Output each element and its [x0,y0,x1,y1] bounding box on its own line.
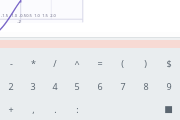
staticText: -2 [17,19,21,24]
button[interactable]: ) [134,51,157,74]
button[interactable]: 2 [0,74,22,97]
staticText: 1.0 [34,13,40,18]
staticText: ■ [164,104,173,114]
staticText: 2 [8,80,14,92]
button[interactable]: = [88,51,111,74]
staticText: 8 [143,80,149,92]
staticText: : [76,103,79,115]
button[interactable]: 4 [44,74,66,97]
button[interactable]: 9 [157,74,180,97]
staticText: 6 [97,80,103,92]
button[interactable]: * [22,51,44,74]
staticText: 9 [166,80,172,92]
button[interactable]: : [66,97,88,120]
staticText: , [32,103,35,115]
staticText: $ [166,57,172,69]
staticText: ^ [74,57,80,69]
staticText: 4 [52,80,58,92]
button[interactable]: 6 [88,74,111,97]
staticText: -1.5 [1,13,8,18]
button[interactable]: ■ [157,97,180,120]
staticText: ( [121,57,124,69]
staticText: 1.5 [42,13,48,18]
staticText: / [53,57,57,69]
button[interactable]: , [22,97,44,120]
staticText: -1.0 [10,13,17,18]
staticText: + [8,103,14,115]
button[interactable]: ( [111,51,134,74]
button[interactable]: - [0,51,22,74]
button[interactable]: . [44,97,66,120]
staticText: 2.0 [50,13,56,18]
button[interactable]: 7 [111,74,134,97]
staticText: - [10,57,13,69]
staticText: 3 [30,80,36,92]
button[interactable]: / [44,51,66,74]
button[interactable]: ^ [66,51,88,74]
button[interactable]: 8 [134,74,157,97]
staticText: 5 [74,80,80,92]
staticText: 0.5 [26,13,32,18]
staticText: * [31,57,36,69]
button[interactable]: + [0,97,22,120]
button[interactable]: 5 [66,74,88,97]
button[interactable]: 3 [22,74,44,97]
staticText: -0.5 [19,13,26,18]
staticText: 7 [120,80,126,92]
staticText: . [54,103,57,115]
button[interactable]: $ [157,51,180,74]
staticText: = [97,57,103,69]
staticText: ) [144,57,147,69]
